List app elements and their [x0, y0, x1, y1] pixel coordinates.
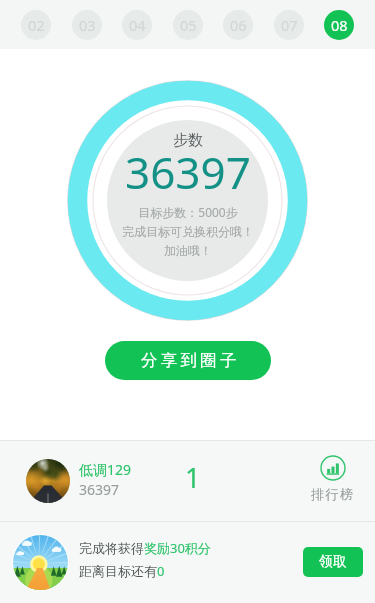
staticText: 完成将获得奖励30积分	[79, 539, 211, 557]
other: 排行榜	[320, 455, 346, 481]
button[interactable]: 08	[324, 10, 354, 40]
staticText: 03	[79, 15, 96, 35]
button[interactable]: 06	[223, 10, 253, 40]
staticText: 08	[331, 15, 348, 35]
staticText: 07	[281, 15, 298, 35]
staticText: 05	[180, 15, 197, 35]
staticText: 分享到圈子	[141, 350, 240, 371]
button[interactable]: 分享到圈子	[105, 341, 271, 380]
staticText: 步数	[173, 131, 203, 150]
staticText: 02	[28, 15, 45, 35]
button[interactable]: 04	[122, 10, 152, 40]
staticText: 目标步数：5000步 完成目标可兑换积分哦！ 加油哦！	[122, 204, 254, 259]
button[interactable]: 05	[173, 10, 203, 40]
staticText: 排行榜	[311, 486, 355, 502]
staticText: 06	[230, 15, 247, 35]
button[interactable]: 07	[274, 10, 304, 40]
staticText: 低调129	[79, 460, 132, 479]
button[interactable]: 领取	[303, 547, 363, 577]
button[interactable]: 低调129	[0, 441, 375, 521]
staticText: 领取	[319, 553, 347, 571]
button[interactable]: 02	[21, 10, 51, 40]
button[interactable]: 03	[72, 10, 102, 40]
staticText: 距离目标还有0	[79, 562, 165, 580]
staticText: 36397	[125, 142, 251, 202]
staticText: 04	[129, 15, 146, 35]
button[interactable]: 排行榜	[305, 455, 360, 502]
staticText: 1	[185, 459, 201, 496]
staticText: 36397	[79, 480, 120, 499]
